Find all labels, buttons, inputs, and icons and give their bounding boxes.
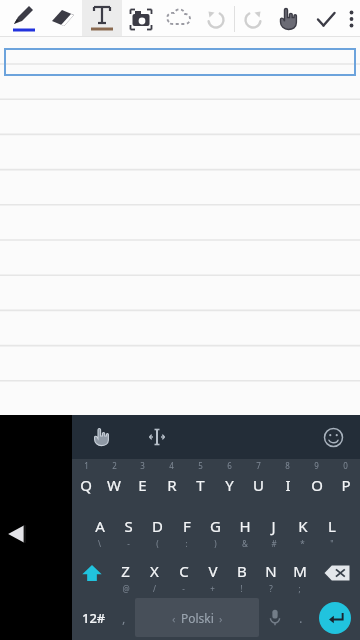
staticText: N <box>265 561 277 581</box>
button[interactable]: Backspace <box>314 550 360 595</box>
button[interactable]: C <box>169 550 198 595</box>
staticText: 6 <box>227 460 232 471</box>
staticText: . <box>299 609 303 627</box>
staticText: 12# <box>82 609 106 627</box>
button[interactable]: 2 <box>100 459 128 505</box>
staticText: P <box>341 475 351 495</box>
button[interactable]: Z <box>111 550 140 595</box>
staticText: R <box>167 475 177 495</box>
button[interactable]: G <box>201 505 230 550</box>
button[interactable]: 1 <box>72 459 100 505</box>
button[interactable]: K <box>288 505 317 550</box>
staticText: , <box>122 609 126 627</box>
staticText: 0 <box>343 460 348 471</box>
button[interactable]: 3 <box>128 459 157 505</box>
staticText: D <box>152 516 163 536</box>
staticText: ? <box>269 583 273 594</box>
staticText: / <box>153 583 156 594</box>
staticText: F <box>183 516 191 536</box>
staticText: + <box>210 583 215 594</box>
button[interactable]: F <box>172 505 201 550</box>
button[interactable]: Emoji <box>316 420 350 454</box>
staticText: A <box>95 516 105 536</box>
staticText: B <box>237 561 247 581</box>
staticText: 9 <box>314 460 319 471</box>
button[interactable]: Voice input <box>259 598 290 637</box>
button[interactable]: Text <box>82 0 122 37</box>
staticText: ) <box>214 538 217 549</box>
staticText: T <box>196 475 205 495</box>
staticText: 1 <box>84 460 89 471</box>
staticText: - <box>127 538 130 549</box>
staticText: 7 <box>256 460 261 471</box>
staticText: & <box>242 538 248 549</box>
button[interactable]: S <box>114 505 143 550</box>
staticText: W <box>107 475 121 495</box>
staticText: K <box>298 516 308 536</box>
staticText: Q <box>80 475 92 495</box>
staticText: : <box>185 538 188 549</box>
button[interactable]: X <box>140 550 169 595</box>
button[interactable]: 5 <box>186 459 215 505</box>
button[interactable]: 6 <box>215 459 244 505</box>
button[interactable]: Shift <box>72 550 111 595</box>
button[interactable]: Redo <box>235 0 271 37</box>
button[interactable]: Text input field <box>4 48 356 76</box>
button[interactable]: Move cursor <box>140 420 174 454</box>
staticText: X <box>150 561 159 581</box>
staticText: ‹ <box>172 611 176 626</box>
staticText: M <box>293 561 307 581</box>
staticText: U <box>253 475 264 495</box>
button[interactable]: A <box>85 505 114 550</box>
button[interactable]: M <box>285 550 314 595</box>
button[interactable]: D <box>143 505 172 550</box>
button[interactable]: Camera <box>122 0 160 37</box>
staticText: L <box>328 516 336 536</box>
button[interactable]: Undo <box>198 0 234 37</box>
button[interactable]: Done <box>307 0 345 37</box>
staticText: S <box>124 516 133 536</box>
staticText: - <box>182 583 185 594</box>
button[interactable]: Back <box>0 459 72 640</box>
button[interactable]: More options <box>345 0 358 37</box>
staticText: Polski <box>181 610 214 626</box>
button[interactable]: One-handed mode <box>84 420 118 454</box>
staticText: E <box>138 475 147 495</box>
button[interactable]: 12# <box>75 598 113 637</box>
button[interactable]: H <box>230 505 259 550</box>
button[interactable]: B <box>227 550 256 595</box>
staticText: * <box>300 538 305 549</box>
staticText: " <box>330 538 334 549</box>
button[interactable]: Lasso <box>160 0 198 37</box>
button[interactable]: Select <box>271 0 307 37</box>
staticText: › <box>219 611 223 626</box>
button[interactable]: 0 <box>331 459 360 505</box>
button[interactable]: N <box>256 550 285 595</box>
staticText: Z <box>121 561 130 581</box>
button[interactable]: 4 <box>157 459 186 505</box>
button[interactable]: 9 <box>302 459 331 505</box>
button[interactable]: Enter <box>319 602 351 634</box>
button[interactable]: Period <box>290 598 312 637</box>
staticText: 2 <box>112 460 117 471</box>
staticText: 5 <box>198 460 203 471</box>
staticText: I <box>285 475 291 495</box>
button[interactable]: 7 <box>244 459 273 505</box>
staticText: # <box>271 538 277 549</box>
button[interactable]: L <box>317 505 346 550</box>
button[interactable]: Space <box>135 598 259 637</box>
staticText: J <box>271 516 276 536</box>
button[interactable]: Comma <box>113 598 135 637</box>
staticText: O <box>311 475 323 495</box>
staticText: 4 <box>169 460 174 471</box>
button[interactable]: J <box>259 505 288 550</box>
button[interactable]: V <box>198 550 227 595</box>
staticText: ( <box>156 538 159 549</box>
staticText: 3 <box>140 460 145 471</box>
button[interactable]: Eraser <box>44 0 82 37</box>
staticText: 8 <box>285 460 290 471</box>
button[interactable]: Pen <box>4 0 44 37</box>
staticText: G <box>210 516 221 536</box>
staticText: H <box>239 516 251 536</box>
button[interactable]: 8 <box>273 459 302 505</box>
